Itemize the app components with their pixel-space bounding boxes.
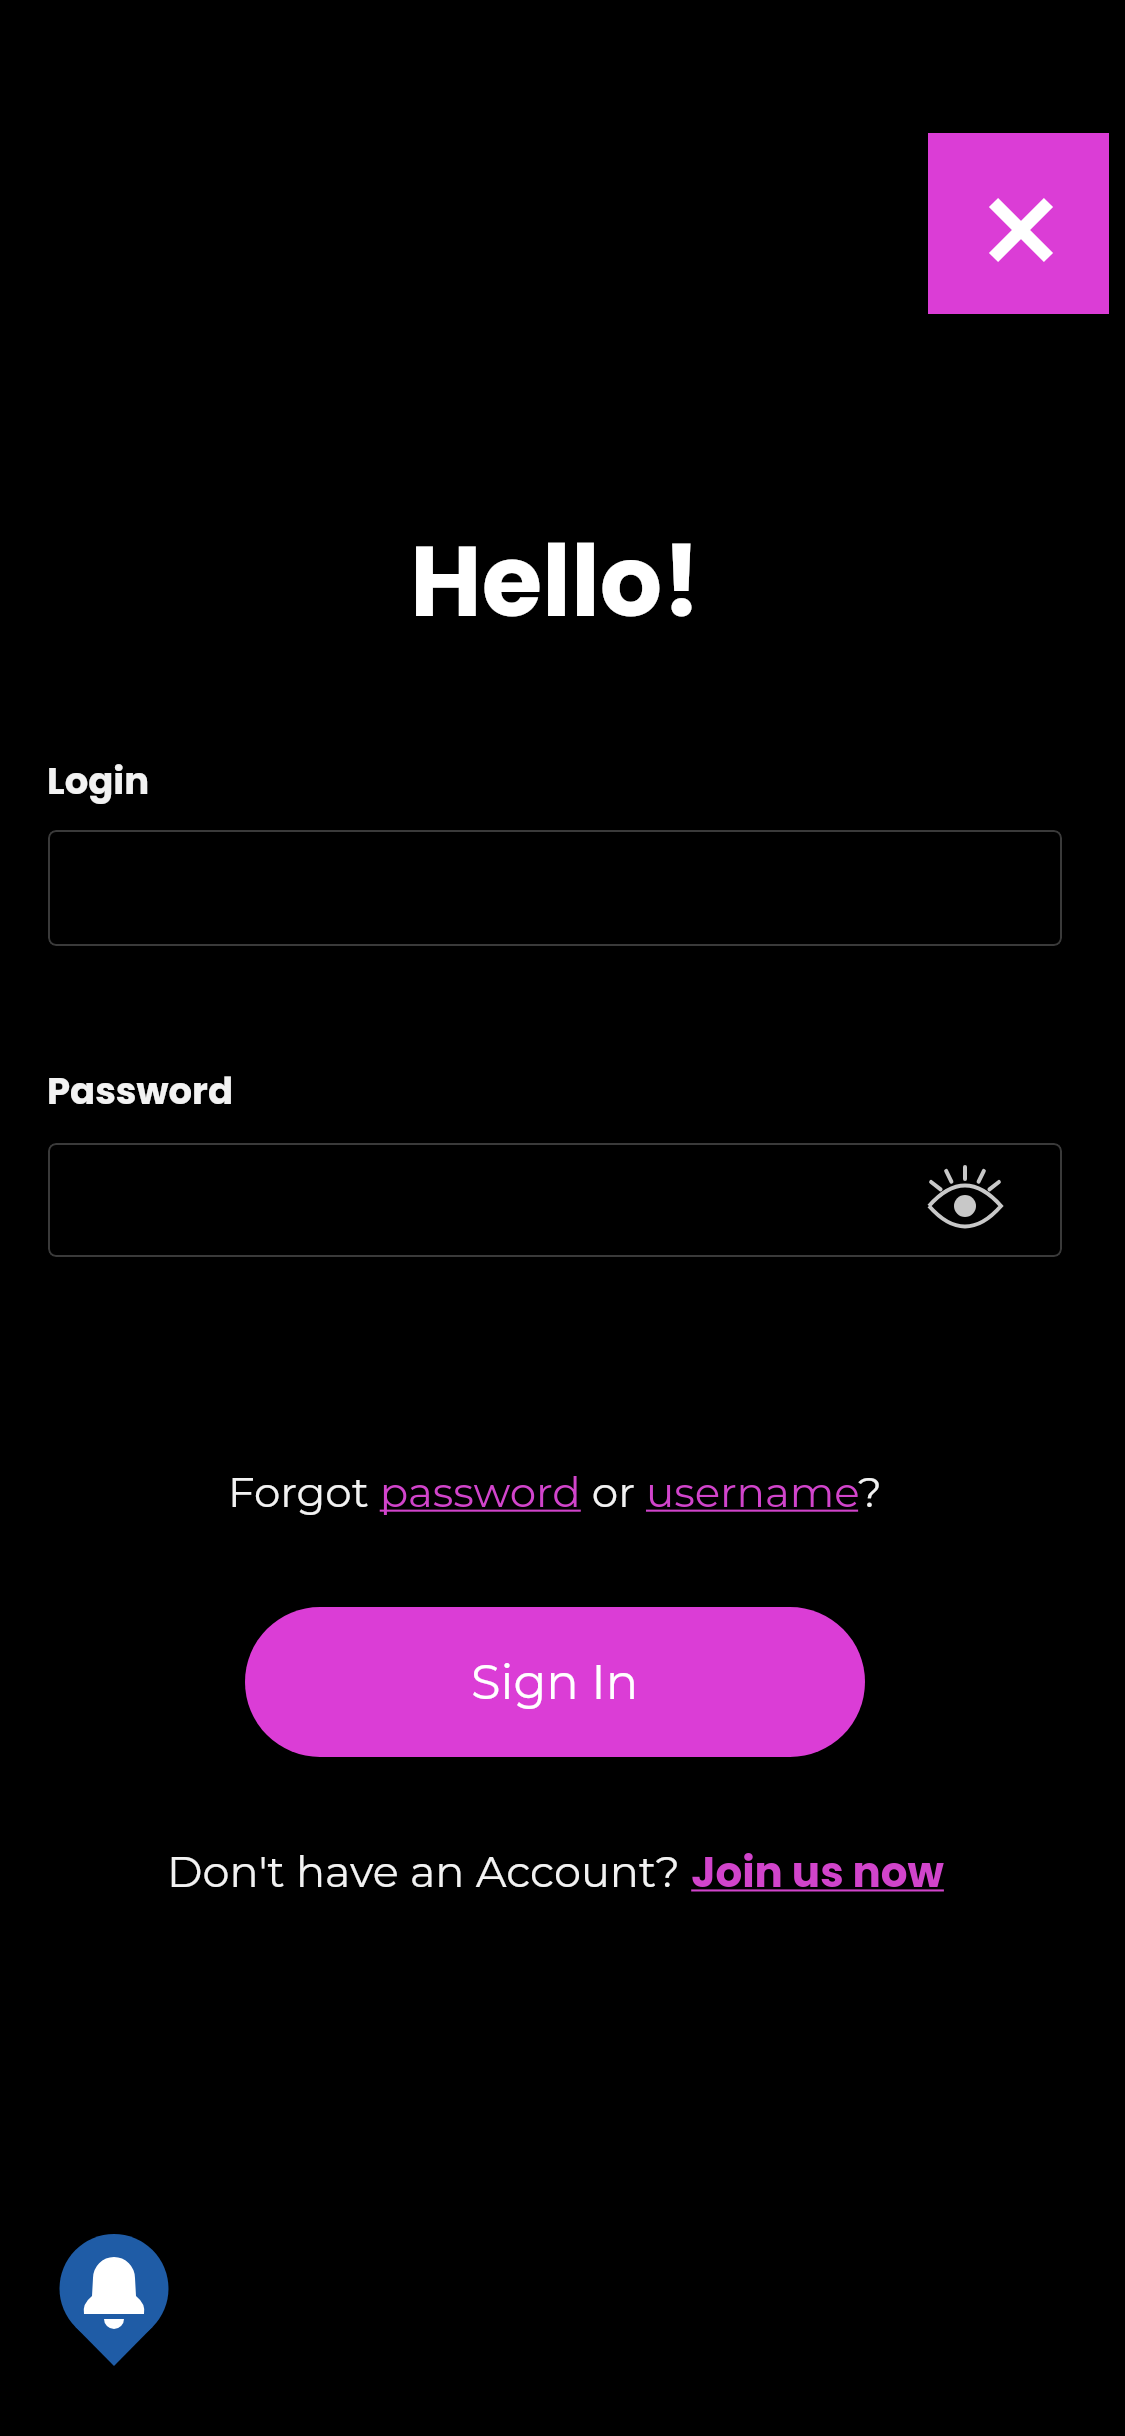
button[interactable]: Sign In [245, 1607, 865, 1757]
button[interactable] [48, 1143, 1062, 1257]
button[interactable] [59, 2232, 171, 2368]
button[interactable] [48, 830, 1062, 946]
staticText: Hello! [410, 513, 701, 650]
staticText: Login [47, 755, 150, 807]
button[interactable] [920, 1160, 1010, 1250]
staticText: Sign In [471, 1653, 639, 1712]
button[interactable] [928, 133, 1109, 314]
button[interactable]: Don't have an Account? Join us now [167, 1843, 944, 1902]
staticText: Password [47, 1065, 234, 1117]
button[interactable]: Forgot password or username? [228, 1466, 882, 1517]
